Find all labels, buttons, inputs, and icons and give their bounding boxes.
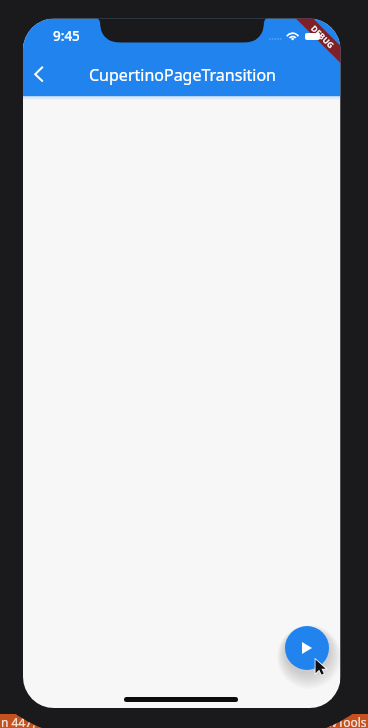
staticText: DevTools <box>316 714 367 728</box>
staticText: n 447, <box>1 714 39 728</box>
staticText: CupertinoPageTransition <box>89 64 276 86</box>
button[interactable]: Play <box>285 626 329 670</box>
button[interactable]: Back <box>26 59 60 93</box>
staticText: 9:45 <box>53 27 80 45</box>
staticText: DEBUG <box>308 23 337 52</box>
